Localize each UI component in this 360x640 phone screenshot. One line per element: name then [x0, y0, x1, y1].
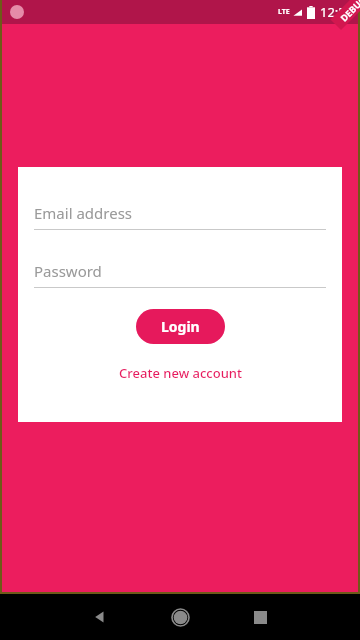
button[interactable]: Email address: [18, 197, 342, 230]
staticText: Create new account: [119, 364, 242, 382]
button[interactable]: Login: [136, 309, 225, 344]
button[interactable]: Home: [140, 594, 220, 640]
staticText: LTE: [278, 7, 290, 17]
staticText: Email address: [34, 203, 133, 223]
button[interactable]: Create new account: [119, 364, 242, 382]
button[interactable]: Recent apps: [220, 594, 300, 640]
button[interactable]: Back: [60, 594, 140, 640]
staticText: Login: [161, 317, 200, 336]
staticText: Password: [34, 261, 102, 281]
staticText: DEBUG: [337, 0, 360, 24]
button[interactable]: Password: [18, 255, 342, 288]
staticText: 12:58: [320, 3, 354, 21]
